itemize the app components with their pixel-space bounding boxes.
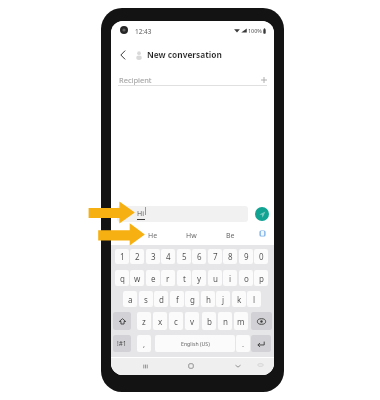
button[interactable]: 3 xyxy=(146,249,160,264)
button[interactable]: q xyxy=(115,270,129,286)
button[interactable]: Add recipient xyxy=(259,75,268,84)
button[interactable]: u xyxy=(208,270,222,286)
button[interactable]: Switch keyboard xyxy=(255,360,265,370)
staticText: 6 xyxy=(197,251,202,262)
staticText: v xyxy=(190,316,195,327)
staticText: d xyxy=(159,294,164,305)
staticText: He xyxy=(148,231,158,241)
button[interactable]: English (US) xyxy=(155,335,235,352)
staticText: z xyxy=(142,316,146,327)
staticText: k xyxy=(237,294,242,305)
button[interactable]: k xyxy=(232,291,246,307)
staticText: Recipient xyxy=(119,75,152,85)
staticText: i xyxy=(229,273,232,284)
button[interactable]: 8 xyxy=(223,249,237,264)
staticText: r xyxy=(166,273,170,284)
button[interactable]: j xyxy=(216,291,230,307)
button[interactable]: w xyxy=(130,270,144,286)
button[interactable]: l xyxy=(247,291,261,307)
staticText: w xyxy=(134,273,141,284)
staticText: Hw xyxy=(186,231,197,241)
button[interactable]: s xyxy=(139,291,153,307)
button[interactable]: p xyxy=(254,270,268,286)
staticText: Hi xyxy=(137,209,144,219)
staticText: New conversation xyxy=(147,49,222,60)
button[interactable]: z xyxy=(137,312,151,330)
staticText: . xyxy=(242,339,245,349)
staticText: !#1 xyxy=(117,339,127,348)
staticText: g xyxy=(190,294,195,305)
button[interactable]: Enter xyxy=(251,335,271,352)
button[interactable]: Hw xyxy=(172,226,211,245)
button[interactable]: v xyxy=(185,312,199,330)
staticText: o xyxy=(244,273,249,284)
button[interactable]: 5 xyxy=(177,249,191,264)
button[interactable]: , xyxy=(137,335,151,352)
staticText: 7 xyxy=(213,251,218,262)
button[interactable]: c xyxy=(169,312,183,330)
button[interactable]: o xyxy=(239,270,253,286)
staticText: u xyxy=(213,273,218,284)
button[interactable]: Shift xyxy=(113,312,131,330)
staticText: 2 xyxy=(135,251,140,262)
button[interactable]: y xyxy=(192,270,206,286)
button[interactable]: n xyxy=(218,312,232,330)
staticText: 0 xyxy=(259,251,264,262)
button[interactable]: d xyxy=(154,291,168,307)
button[interactable]: He xyxy=(134,226,172,245)
button[interactable]: t xyxy=(177,270,191,286)
staticText: n xyxy=(223,316,228,327)
button[interactable]: a xyxy=(123,291,137,307)
button[interactable]: Back xyxy=(115,47,131,63)
button[interactable]: 6 xyxy=(192,249,206,264)
button[interactable]: !#1 xyxy=(113,335,131,352)
button[interactable]: m xyxy=(234,312,248,330)
button[interactable]: 9 xyxy=(239,249,253,264)
staticText: f xyxy=(176,294,179,305)
button[interactable]: x xyxy=(153,312,167,330)
staticText: 1 xyxy=(120,251,125,262)
button[interactable]: 2 xyxy=(130,249,144,264)
staticText: t xyxy=(183,273,186,284)
staticText: 100% xyxy=(248,27,262,34)
staticText: x xyxy=(158,316,163,327)
staticText: p xyxy=(259,273,264,284)
button[interactable]: Home xyxy=(185,360,197,372)
button[interactable]: 7 xyxy=(208,249,222,264)
button[interactable]: Backspace xyxy=(251,312,272,330)
button[interactable]: 4 xyxy=(161,249,175,264)
button[interactable]: . xyxy=(236,335,250,352)
button[interactable]: Hi xyxy=(117,206,248,222)
staticText: j xyxy=(222,294,225,305)
staticText: q xyxy=(120,273,125,284)
staticText: e xyxy=(151,273,156,284)
staticText: Be xyxy=(226,231,235,241)
button[interactable]: Back xyxy=(232,360,244,372)
staticText: b xyxy=(207,316,212,327)
staticText: y xyxy=(197,273,202,284)
staticText: c xyxy=(174,316,178,327)
button[interactable]: g xyxy=(185,291,199,307)
staticText: 8 xyxy=(228,251,233,262)
button[interactable]: e xyxy=(146,270,160,286)
staticText: 5 xyxy=(182,251,187,262)
staticText: s xyxy=(144,294,148,305)
staticText: h xyxy=(206,294,211,305)
staticText: m xyxy=(237,316,245,327)
staticText: 12:43 xyxy=(135,27,152,36)
button[interactable]: Be xyxy=(211,226,250,245)
button[interactable]: h xyxy=(201,291,215,307)
button[interactable]: f xyxy=(170,291,184,307)
staticText: 9 xyxy=(244,251,249,262)
button[interactable]: 0 xyxy=(254,249,268,264)
staticText: 3 xyxy=(151,251,156,262)
button[interactable]: Send xyxy=(255,207,269,221)
button[interactable]: 1 xyxy=(115,249,129,264)
button[interactable]: b xyxy=(202,312,216,330)
staticText: l xyxy=(253,294,256,305)
button[interactable]: Clipboard xyxy=(255,224,269,243)
button[interactable]: r xyxy=(161,270,175,286)
button[interactable]: Recents xyxy=(139,360,151,372)
button[interactable]: Contact avatar xyxy=(132,48,146,62)
button[interactable]: i xyxy=(223,270,237,286)
